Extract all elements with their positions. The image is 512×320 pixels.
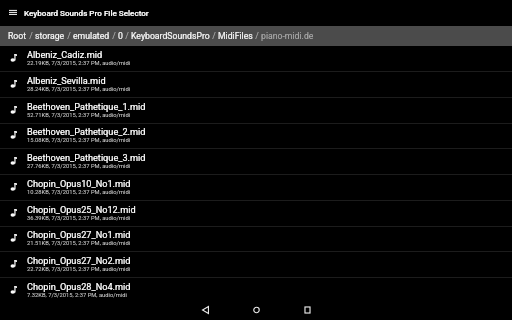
button[interactable]: Chopin_Opus27_No2.mid xyxy=(0,252,512,278)
staticText: / xyxy=(210,31,218,41)
button[interactable]: KeyboardSoundsPro xyxy=(131,31,210,41)
staticText: 52.71KB, 7/3/2015, 2:37 PM, audio/midi xyxy=(27,112,131,119)
staticText: Chopin_Opus27_No2.mid xyxy=(27,255,131,266)
staticText: / xyxy=(123,31,131,41)
staticText: 15.08KB, 7/3/2015, 2:37 PM, audio/midi xyxy=(27,137,131,144)
button[interactable]: 0 xyxy=(118,31,123,41)
staticText: 36.39KB, 7/3/2015, 2:37 PM, audio/midi xyxy=(27,215,131,222)
staticText: 10.28KB, 7/3/2015, 2:37 PM, audio/midi xyxy=(27,189,131,196)
button[interactable]: Chopin_Opus27_No1.mid xyxy=(0,226,512,252)
staticText: emulated xyxy=(73,31,110,41)
staticText: 0 xyxy=(118,31,123,41)
staticText: Beethoven_Pathetique_3.mid xyxy=(27,152,146,163)
button[interactable]: emulated xyxy=(73,31,110,41)
staticText: piano-midi.de xyxy=(261,31,314,41)
staticText: / xyxy=(253,31,261,41)
staticText: Chopin_Opus28_No4.mid xyxy=(27,281,131,292)
staticText: 22.72KB, 7/3/2015, 2:37 PM, audio/midi xyxy=(27,266,131,273)
button[interactable]: Chopin_Opus25_No12.mid xyxy=(0,201,512,227)
staticText: / xyxy=(27,31,35,41)
staticText: Albeniz_Cadiz.mid xyxy=(27,49,103,60)
button[interactable]: Chopin_Opus10_No1.mid xyxy=(0,175,512,201)
button[interactable]: storage xyxy=(35,31,65,41)
button[interactable]: Chopin_Opus28_No4.mid xyxy=(0,278,512,304)
button[interactable]: Home xyxy=(246,300,266,320)
staticText: Beethoven_Pathetique_1.mid xyxy=(27,101,146,112)
button[interactable]: Recent apps xyxy=(297,300,317,320)
staticText: KeyboardSoundsPro xyxy=(131,31,210,41)
staticText: / xyxy=(65,31,73,41)
button[interactable]: Albeniz_Cadiz.mid xyxy=(0,46,512,72)
button[interactable]: Root xyxy=(8,31,27,41)
staticText: Beethoven_Pathetique_2.mid xyxy=(27,126,146,137)
staticText: Root xyxy=(8,31,27,41)
staticText: 21.51KB, 7/3/2015, 2:37 PM, audio/midi xyxy=(27,240,131,247)
staticText: 27.76KB, 7/3/2015, 2:37 PM, audio/midi xyxy=(27,163,131,170)
staticText: Albeniz_Sevilla.mid xyxy=(27,75,106,86)
button[interactable]: MidiFiles xyxy=(218,31,253,41)
staticText: 28.24KB, 7/3/2015, 2:37 PM, audio/midi xyxy=(27,86,131,93)
button[interactable]: Back xyxy=(195,300,215,320)
button[interactable]: Beethoven_Pathetique_2.mid xyxy=(0,123,512,149)
staticText: Chopin_Opus10_No1.mid xyxy=(27,178,131,189)
staticText: storage xyxy=(35,31,65,41)
button[interactable]: Albeniz_Sevilla.mid xyxy=(0,72,512,98)
staticText: Keyboard Sounds Pro File Selector xyxy=(24,8,149,17)
staticText: Chopin_Opus27_No1.mid xyxy=(27,229,131,240)
staticText: 7.32KB, 7/3/2015, 2:37 PM, audio/midi xyxy=(27,292,127,299)
staticText: / xyxy=(110,31,118,41)
button[interactable]: Beethoven_Pathetique_3.mid xyxy=(0,149,512,175)
staticText: 22.19KB, 7/3/2015, 2:37 PM, audio/midi xyxy=(27,60,131,67)
staticText: MidiFiles xyxy=(218,31,253,41)
button[interactable]: Open navigation drawer xyxy=(0,0,26,26)
button[interactable]: Beethoven_Pathetique_1.mid xyxy=(0,98,512,124)
staticText: Chopin_Opus25_No12.mid xyxy=(27,204,136,215)
